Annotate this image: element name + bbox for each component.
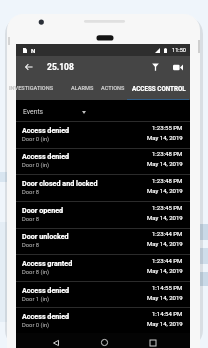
button[interactable]: Access denied: [16, 308, 190, 334]
staticText: May 14, 2019: [147, 320, 183, 327]
staticText: Access denied: [22, 286, 70, 294]
button[interactable]: Access denied: [16, 122, 190, 148]
staticText: 1:23:45 PM: [152, 204, 183, 211]
staticText: May 14, 2019: [147, 160, 183, 167]
staticText: Access denied: [22, 152, 70, 160]
button[interactable]: Door unlocked: [16, 228, 190, 254]
staticText: May 14, 2019: [147, 187, 183, 194]
staticText: N: [31, 47, 36, 54]
staticText: Door closed and locked: [22, 179, 98, 187]
staticText: Events: [23, 108, 44, 116]
staticText: May 14, 2019: [147, 294, 183, 301]
staticText: INVESTIGATIONS: [9, 85, 54, 92]
staticText: Door unlocked: [22, 232, 69, 240]
button[interactable]: Door closed and locked: [16, 175, 190, 201]
button[interactable]: Door opened: [16, 202, 190, 228]
staticText: 1:14:54 PM: [152, 310, 183, 317]
staticText: Door 8 (in): [22, 269, 50, 276]
button[interactable]: Record video: [170, 59, 186, 75]
staticText: Door 8: [22, 189, 40, 196]
button[interactable]: Back: [46, 335, 66, 348]
staticText: 1:14:55 PM: [152, 284, 183, 291]
button[interactable]: Home: [94, 335, 114, 348]
staticText: Door 8: [22, 242, 40, 249]
staticText: 1:23:48 PM: [152, 177, 183, 184]
staticText: 11:50: [172, 47, 186, 54]
button[interactable]: Filter: [147, 59, 163, 75]
staticText: Door 0 (in): [22, 322, 50, 329]
staticText: Door 8: [22, 216, 40, 223]
staticText: Door opened: [22, 206, 64, 214]
staticText: 1:23:55 PM: [152, 124, 183, 131]
staticText: ACCESS CONTROL: [132, 85, 186, 92]
button[interactable]: ACCESS CONTROL: [128, 78, 190, 99]
button[interactable]: Recent apps: [143, 335, 163, 348]
button[interactable]: Events: [16, 100, 190, 121]
button[interactable]: ACTIONS: [97, 78, 129, 99]
staticText: May 14, 2019: [147, 240, 183, 247]
button[interactable]: Access denied: [16, 148, 190, 174]
staticText: 1:23:48 PM: [152, 150, 183, 157]
button[interactable]: Back: [21, 59, 37, 75]
button[interactable]: INVESTIGATIONS: [5, 78, 58, 99]
staticText: 25.108: [47, 62, 74, 72]
staticText: May 14, 2019: [147, 134, 183, 141]
staticText: Access denied: [22, 126, 70, 134]
staticText: May 14, 2019: [147, 267, 183, 274]
staticText: May 14, 2019: [147, 214, 183, 221]
staticText: Door 1 (in): [22, 296, 50, 303]
button[interactable]: Access granted: [16, 255, 190, 281]
staticText: 1:23:44 PM: [152, 230, 183, 237]
staticText: Door 0 (in): [22, 136, 50, 143]
staticText: ALARMS: [71, 85, 94, 92]
staticText: ACTIONS: [101, 85, 125, 92]
staticText: Door 0 (in): [22, 162, 50, 169]
button[interactable]: ALARMS: [67, 78, 98, 99]
staticText: 1:23:44 PM: [152, 257, 183, 264]
button[interactable]: Access denied: [16, 282, 190, 308]
staticText: Access granted: [22, 259, 73, 267]
staticText: Access denied: [22, 312, 70, 320]
